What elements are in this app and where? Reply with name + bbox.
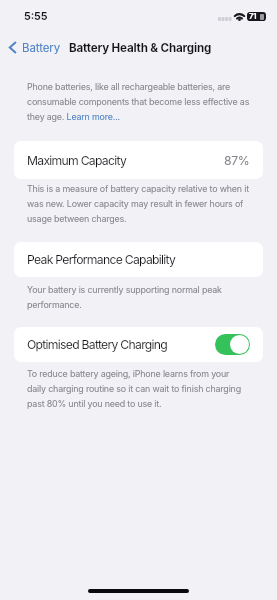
staticText: Maximum Capacity: [27, 153, 127, 168]
other: Cellular signal: [218, 17, 231, 21]
staticText: 71: [249, 12, 257, 21]
staticText: Battery Health & Charging: [69, 41, 212, 55]
staticText: 87%: [224, 153, 250, 168]
button[interactable]: Optimised Battery Charging toggle: [215, 334, 250, 355]
staticText: 5:55: [24, 10, 48, 23]
staticText: Phone batteries, like all rechargeable b…: [27, 81, 250, 122]
button[interactable]: Maximum Capacity: [14, 141, 263, 179]
other: Battery 71 percent: [247, 12, 266, 21]
staticText: Optimised Battery Charging: [27, 337, 168, 352]
button[interactable]: Peak Performance Capability: [14, 242, 263, 277]
staticText: This is a measure of battery capacity re…: [27, 183, 249, 224]
staticText: Your battery is currently supporting nor…: [27, 284, 222, 310]
staticText: To reduce battery ageing, iPhone learns …: [27, 368, 241, 409]
button[interactable]: Optimised Battery Charging: [14, 327, 263, 362]
button[interactable]: Battery: [8, 41, 61, 55]
staticText: Battery: [22, 41, 61, 55]
other: Wi-Fi: [234, 12, 245, 21]
staticText: Peak Performance Capability: [27, 252, 176, 267]
